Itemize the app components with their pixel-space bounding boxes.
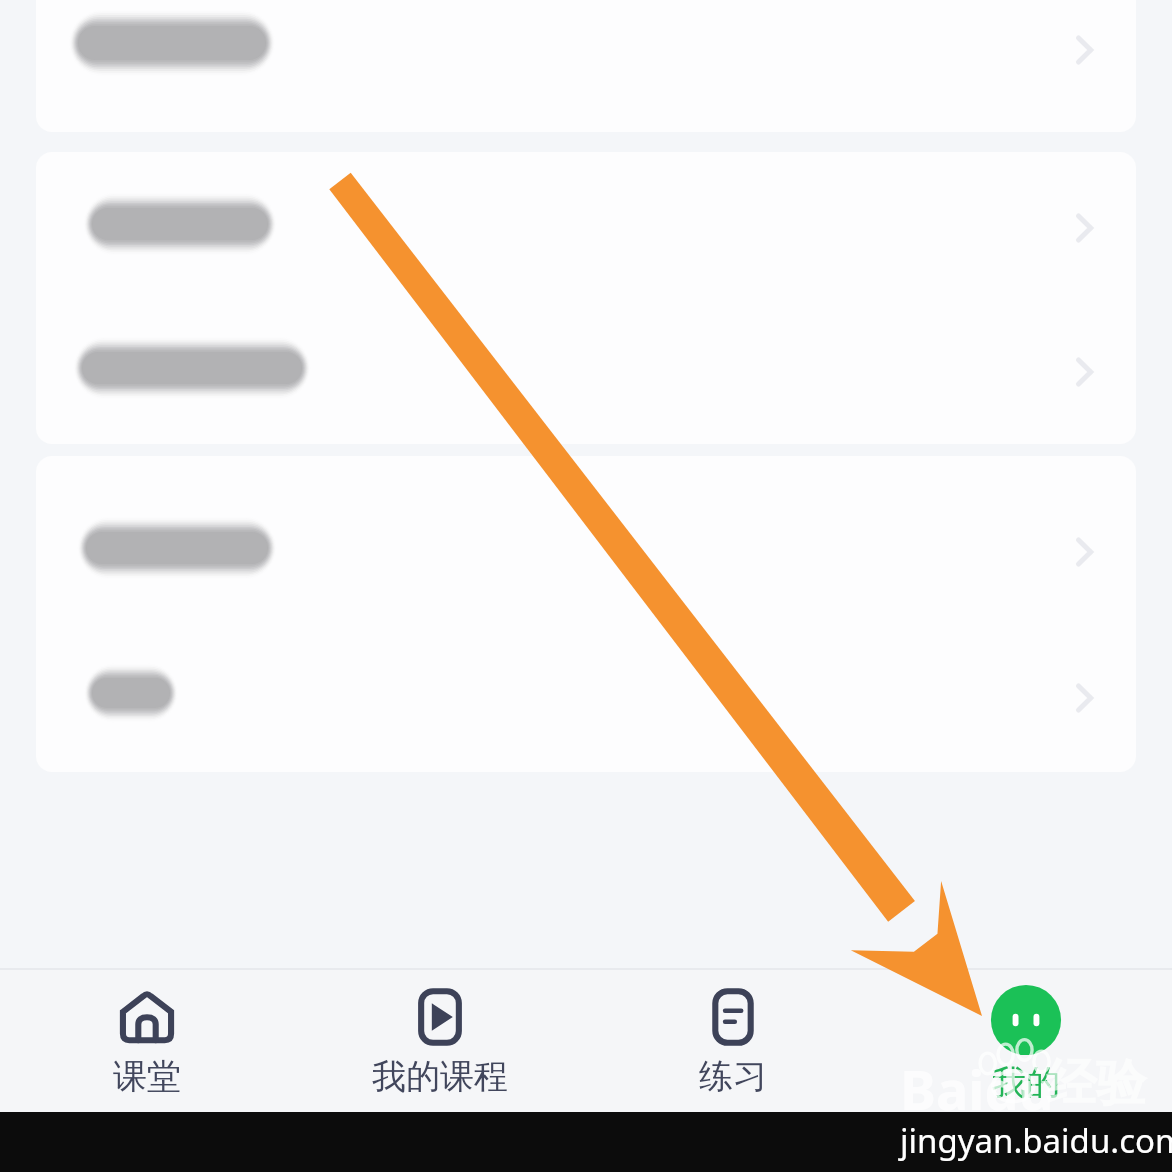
- button[interactable]: [36, 0, 1136, 132]
- button[interactable]: 我的课程: [293, 970, 586, 1098]
- button[interactable]: [36, 152, 1136, 298]
- staticText: jingyan.baidu.com: [900, 1118, 1172, 1163]
- button[interactable]: 我的 Profile: [879, 970, 1172, 1104]
- staticText: 我的: [992, 1061, 1060, 1104]
- staticText: 经验: [1046, 1052, 1146, 1115]
- button[interactable]: [36, 614, 1136, 772]
- button[interactable]: [36, 298, 1136, 444]
- button[interactable]: 课堂: [0, 970, 293, 1098]
- staticText: 我的课程: [372, 1055, 508, 1098]
- staticText: 练习: [699, 1055, 767, 1098]
- staticText: Baidu: [900, 1052, 1054, 1126]
- button[interactable]: [36, 456, 1136, 614]
- button[interactable]: 练习: [586, 970, 879, 1098]
- staticText: 课堂: [113, 1055, 181, 1098]
